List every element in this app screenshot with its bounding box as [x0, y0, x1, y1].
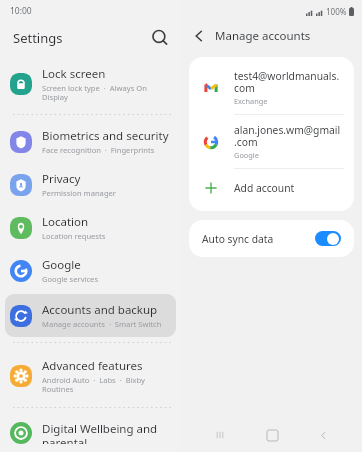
- staticText: Google: [42, 257, 81, 273]
- staticText: Manage accounts · Smart Switch: [42, 319, 162, 329]
- staticText: Exchange: [234, 96, 268, 106]
- staticText: Google services: [42, 274, 99, 284]
- staticText: Advanced features: [42, 358, 143, 374]
- staticText: Accounts and backup: [42, 302, 158, 318]
- button[interactable]: Add account: [189, 169, 354, 207]
- button[interactable]: Advanced features: [5, 350, 176, 402]
- button[interactable]: Google: [5, 249, 176, 292]
- staticText: Digital Wellbeing and parental controls: [42, 421, 168, 444]
- staticText: Manage accounts: [215, 28, 311, 44]
- button[interactable]: test4@worldmanuals.com: [189, 61, 354, 114]
- staticText: Screen lock type · Always On Display: [42, 83, 170, 102]
- staticText: Biometrics and security: [42, 128, 169, 144]
- staticText: Google: [234, 150, 259, 160]
- staticText: Lock screen: [42, 66, 106, 82]
- staticText: Auto sync data: [202, 232, 315, 246]
- staticText: test4@worldmanuals.com: [234, 69, 342, 95]
- button[interactable]: Recents: [207, 422, 233, 448]
- staticText: Face recognition · Fingerprints: [42, 145, 155, 155]
- button[interactable]: Digital Wellbeing and parental controls: [5, 415, 176, 452]
- button[interactable]: Back: [310, 422, 336, 448]
- button[interactable]: Privacy: [5, 163, 176, 206]
- button[interactable]: Search: [149, 27, 171, 49]
- staticText: Privacy: [42, 171, 81, 187]
- staticText: 10:00: [10, 5, 32, 17]
- staticText: Android Auto · Labs · Bixby Routines: [42, 375, 170, 394]
- staticText: Location requests: [42, 231, 106, 241]
- button[interactable]: Accounts and backup: [5, 294, 176, 337]
- button[interactable]: Auto sync data: [189, 220, 354, 257]
- button[interactable]: Home: [259, 422, 285, 448]
- staticText: Permission manager: [42, 188, 116, 198]
- button[interactable]: Location: [5, 206, 176, 249]
- staticText: alan.jones.wm@gmail.com: [234, 123, 342, 149]
- button[interactable]: Biometrics and security: [5, 120, 176, 163]
- button[interactable]: alan.jones.wm@gmail.com: [189, 115, 354, 168]
- button[interactable]: Lock screen: [5, 58, 176, 110]
- staticText: 100%: [326, 6, 347, 17]
- staticText: Settings: [13, 29, 63, 47]
- staticText: Add account: [234, 181, 295, 195]
- button[interactable]: Back: [189, 26, 209, 46]
- staticText: Location: [42, 214, 89, 230]
